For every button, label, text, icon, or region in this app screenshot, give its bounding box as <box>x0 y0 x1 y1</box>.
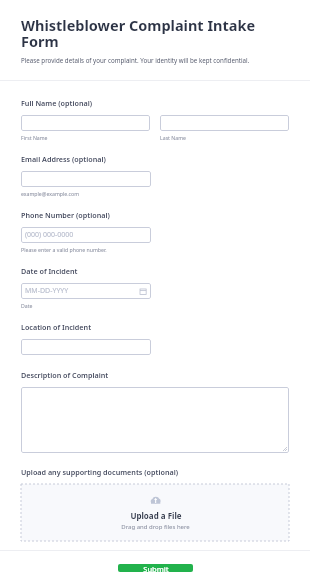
staticText: Full Name (optional) <box>21 98 93 108</box>
button[interactable] <box>21 339 151 355</box>
button[interactable] <box>160 115 289 131</box>
button[interactable] <box>21 115 150 131</box>
button[interactable]: (000) 000-0000 <box>21 227 151 243</box>
staticText: Description of Complaint <box>21 370 109 380</box>
staticText: Date <box>21 302 33 309</box>
staticText: Submit <box>143 564 169 572</box>
staticText: Upload a File <box>130 510 182 521</box>
staticText: First Name <box>21 134 48 141</box>
staticText: Whistleblower Complaint Intake Form <box>21 15 296 52</box>
staticText: Upload any supporting documents (optiona… <box>21 467 179 477</box>
button[interactable]: Upload a File <box>21 484 289 541</box>
staticText: Please enter a valid phone number. <box>21 246 107 253</box>
staticText: Date of Incident <box>21 266 78 276</box>
button[interactable]: Submit <box>118 564 193 572</box>
staticText: example@example.com <box>21 190 80 197</box>
staticText: MM-DD-YYYY <box>25 286 140 296</box>
staticText: Drag and drop files here <box>121 523 190 531</box>
staticText: (000) 000-0000 <box>25 230 147 240</box>
staticText: Location of Incident <box>21 322 92 332</box>
staticText: Last Name <box>160 134 186 141</box>
button[interactable] <box>21 171 151 187</box>
button[interactable] <box>21 387 289 453</box>
staticText: Please provide details of your complaint… <box>21 56 250 64</box>
staticText: Phone Number (optional) <box>21 210 110 220</box>
staticText: Email Address (optional) <box>21 154 106 164</box>
button[interactable]: MM-DD-YYYY <box>21 283 151 299</box>
